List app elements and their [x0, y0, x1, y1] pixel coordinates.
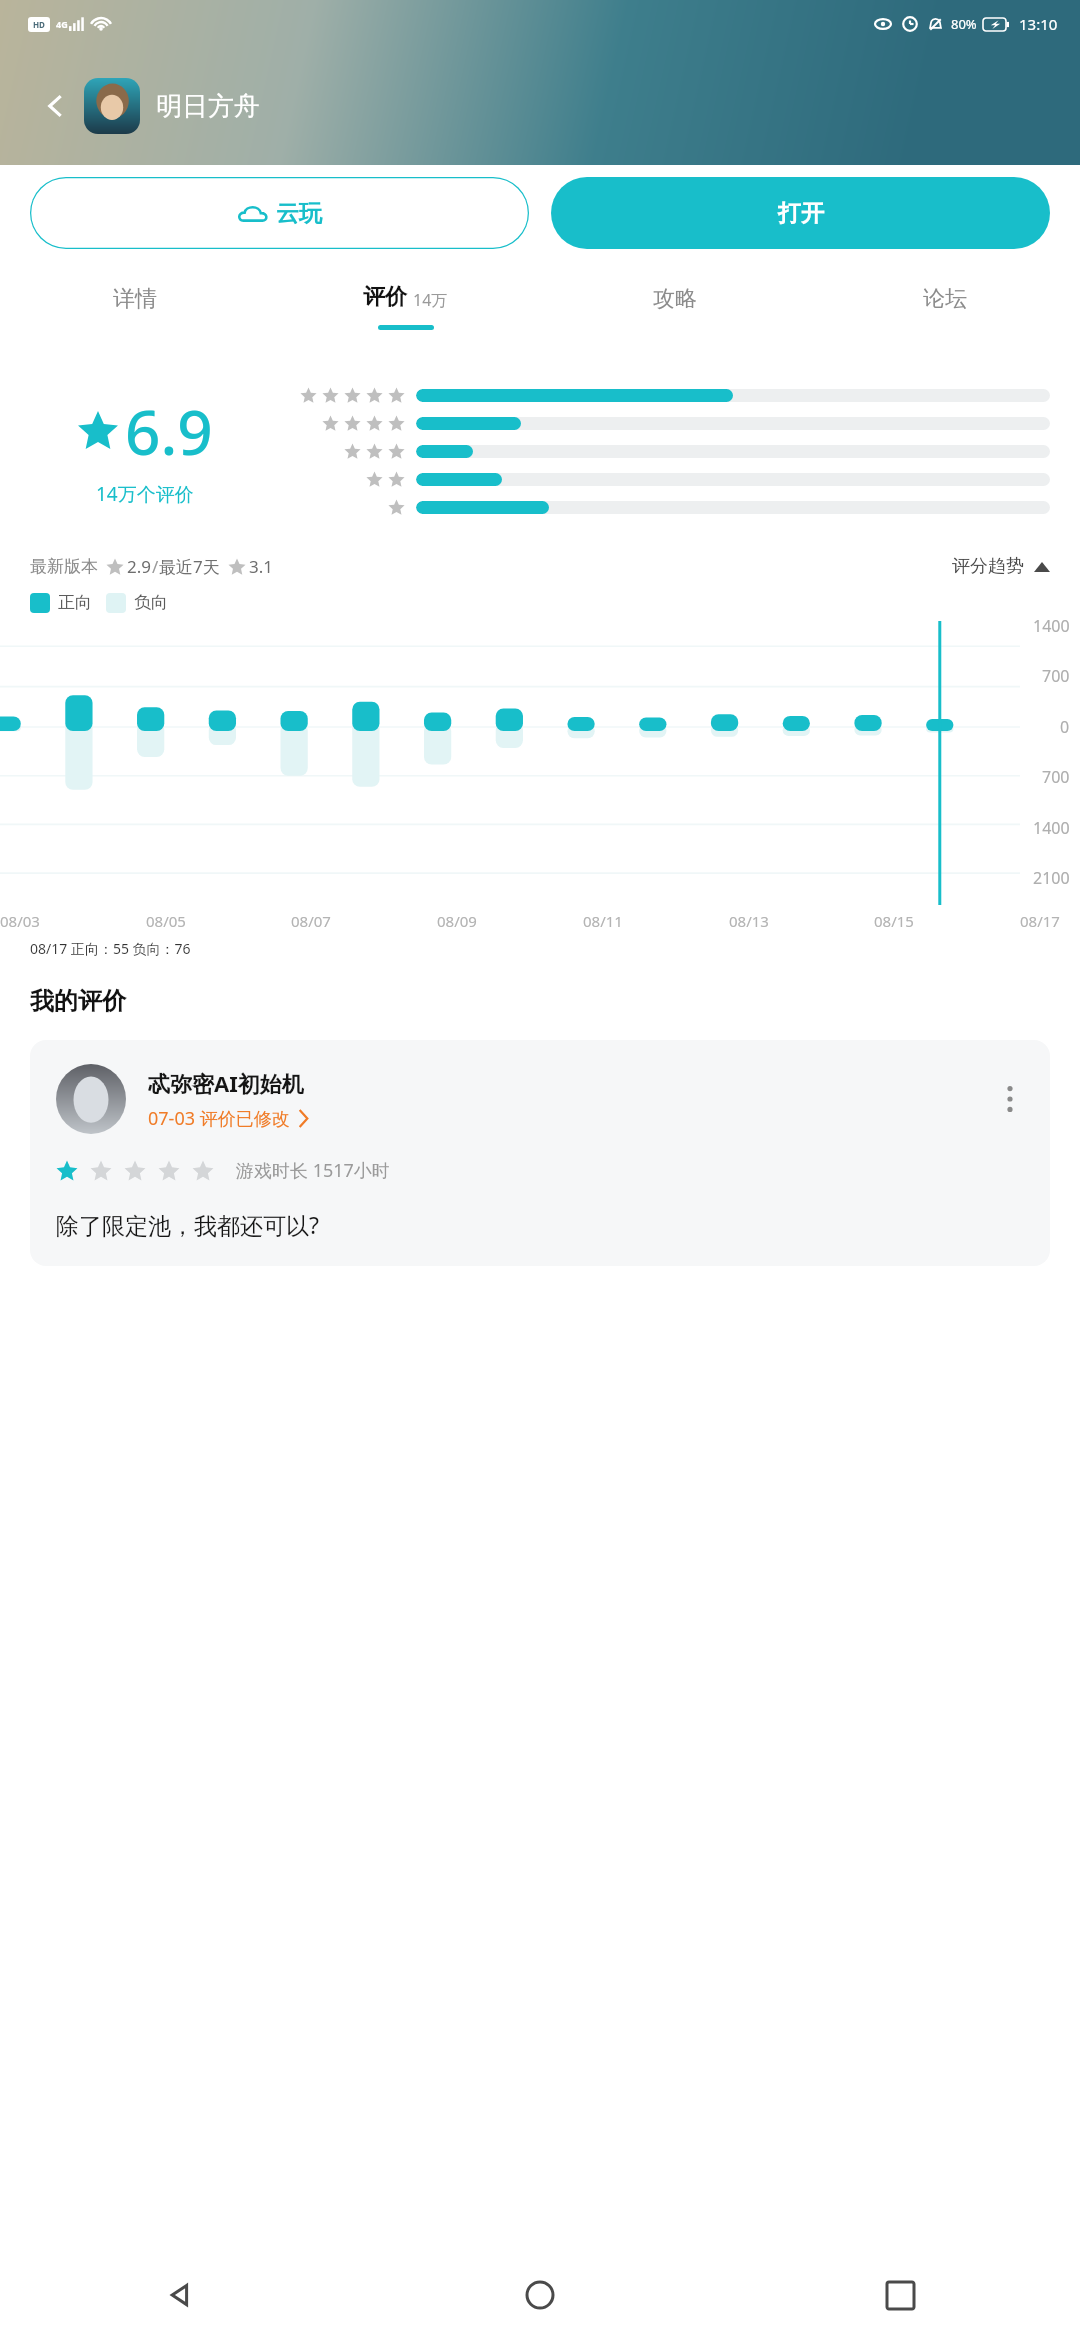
- staticText: 08/03: [0, 911, 40, 931]
- staticText: 忒弥密AI初始机: [148, 1068, 304, 1098]
- staticText: 打开: [778, 199, 824, 228]
- staticText: 700: [1042, 766, 1070, 788]
- button[interactable]: 攻略: [540, 261, 810, 351]
- button[interactable]: 云玩: [30, 177, 529, 249]
- button[interactable]: 评价: [270, 261, 540, 351]
- staticText: 08/11: [583, 911, 623, 931]
- staticText: 正向: [58, 592, 92, 613]
- button[interactable]: 更多: [990, 1079, 1030, 1119]
- button[interactable]: 主页: [360, 2250, 720, 2340]
- staticText: 07-03 评价已修改: [148, 1106, 290, 1131]
- staticText: 14万个评价: [96, 481, 194, 507]
- staticText: 2.9: [127, 555, 152, 578]
- button[interactable]: 忒弥密AI初始机: [30, 1040, 1050, 1266]
- button[interactable]: 返回: [0, 2250, 360, 2340]
- button[interactable]: 返回: [34, 84, 78, 128]
- staticText: 0: [1060, 716, 1070, 738]
- staticText: 4G: [56, 18, 68, 30]
- staticText: 08/13: [729, 911, 769, 931]
- staticText: 08/05: [146, 911, 186, 931]
- staticText: 云玩: [276, 199, 322, 228]
- button[interactable]: 论坛: [810, 261, 1080, 351]
- staticText: 评价: [363, 283, 407, 311]
- staticText: /: [152, 555, 159, 578]
- staticText: 3.1: [249, 555, 274, 578]
- staticText: 13:10: [1019, 14, 1058, 34]
- staticText: 最近7天: [159, 555, 220, 578]
- staticText: 08/15: [874, 911, 914, 931]
- staticText: 我的评价: [30, 986, 126, 1016]
- staticText: 1400: [1033, 817, 1070, 839]
- button[interactable]: 详情: [0, 261, 270, 351]
- staticText: 1400: [1033, 615, 1070, 637]
- staticText: 攻略: [653, 285, 697, 313]
- staticText: 08/17 正向：55 负向：76: [30, 939, 191, 958]
- staticText: 最新版本: [30, 556, 98, 577]
- staticText: 08/09: [437, 911, 477, 931]
- staticText: 08/17: [1020, 911, 1060, 931]
- staticText: 700: [1042, 665, 1070, 687]
- staticText: 80%: [951, 15, 977, 33]
- button[interactable]: 最近任务: [720, 2250, 1080, 2340]
- button[interactable]: 评分趋势: [952, 555, 1050, 578]
- staticText: HD: [33, 19, 45, 30]
- button[interactable]: 打开: [551, 177, 1050, 249]
- staticText: 14万: [413, 289, 448, 311]
- staticText: 6.9: [125, 389, 213, 473]
- staticText: 游戏时长 1517小时: [236, 1158, 390, 1183]
- staticText: 明日方舟: [156, 90, 260, 123]
- staticText: 详情: [113, 285, 157, 313]
- staticText: 08/07: [291, 911, 331, 931]
- staticText: 评分趋势: [952, 555, 1024, 578]
- staticText: 2100: [1033, 867, 1070, 889]
- staticText: 除了限定池，我都还可以?: [56, 1209, 319, 1240]
- staticText: 负向: [134, 592, 168, 613]
- staticText: 论坛: [923, 285, 967, 313]
